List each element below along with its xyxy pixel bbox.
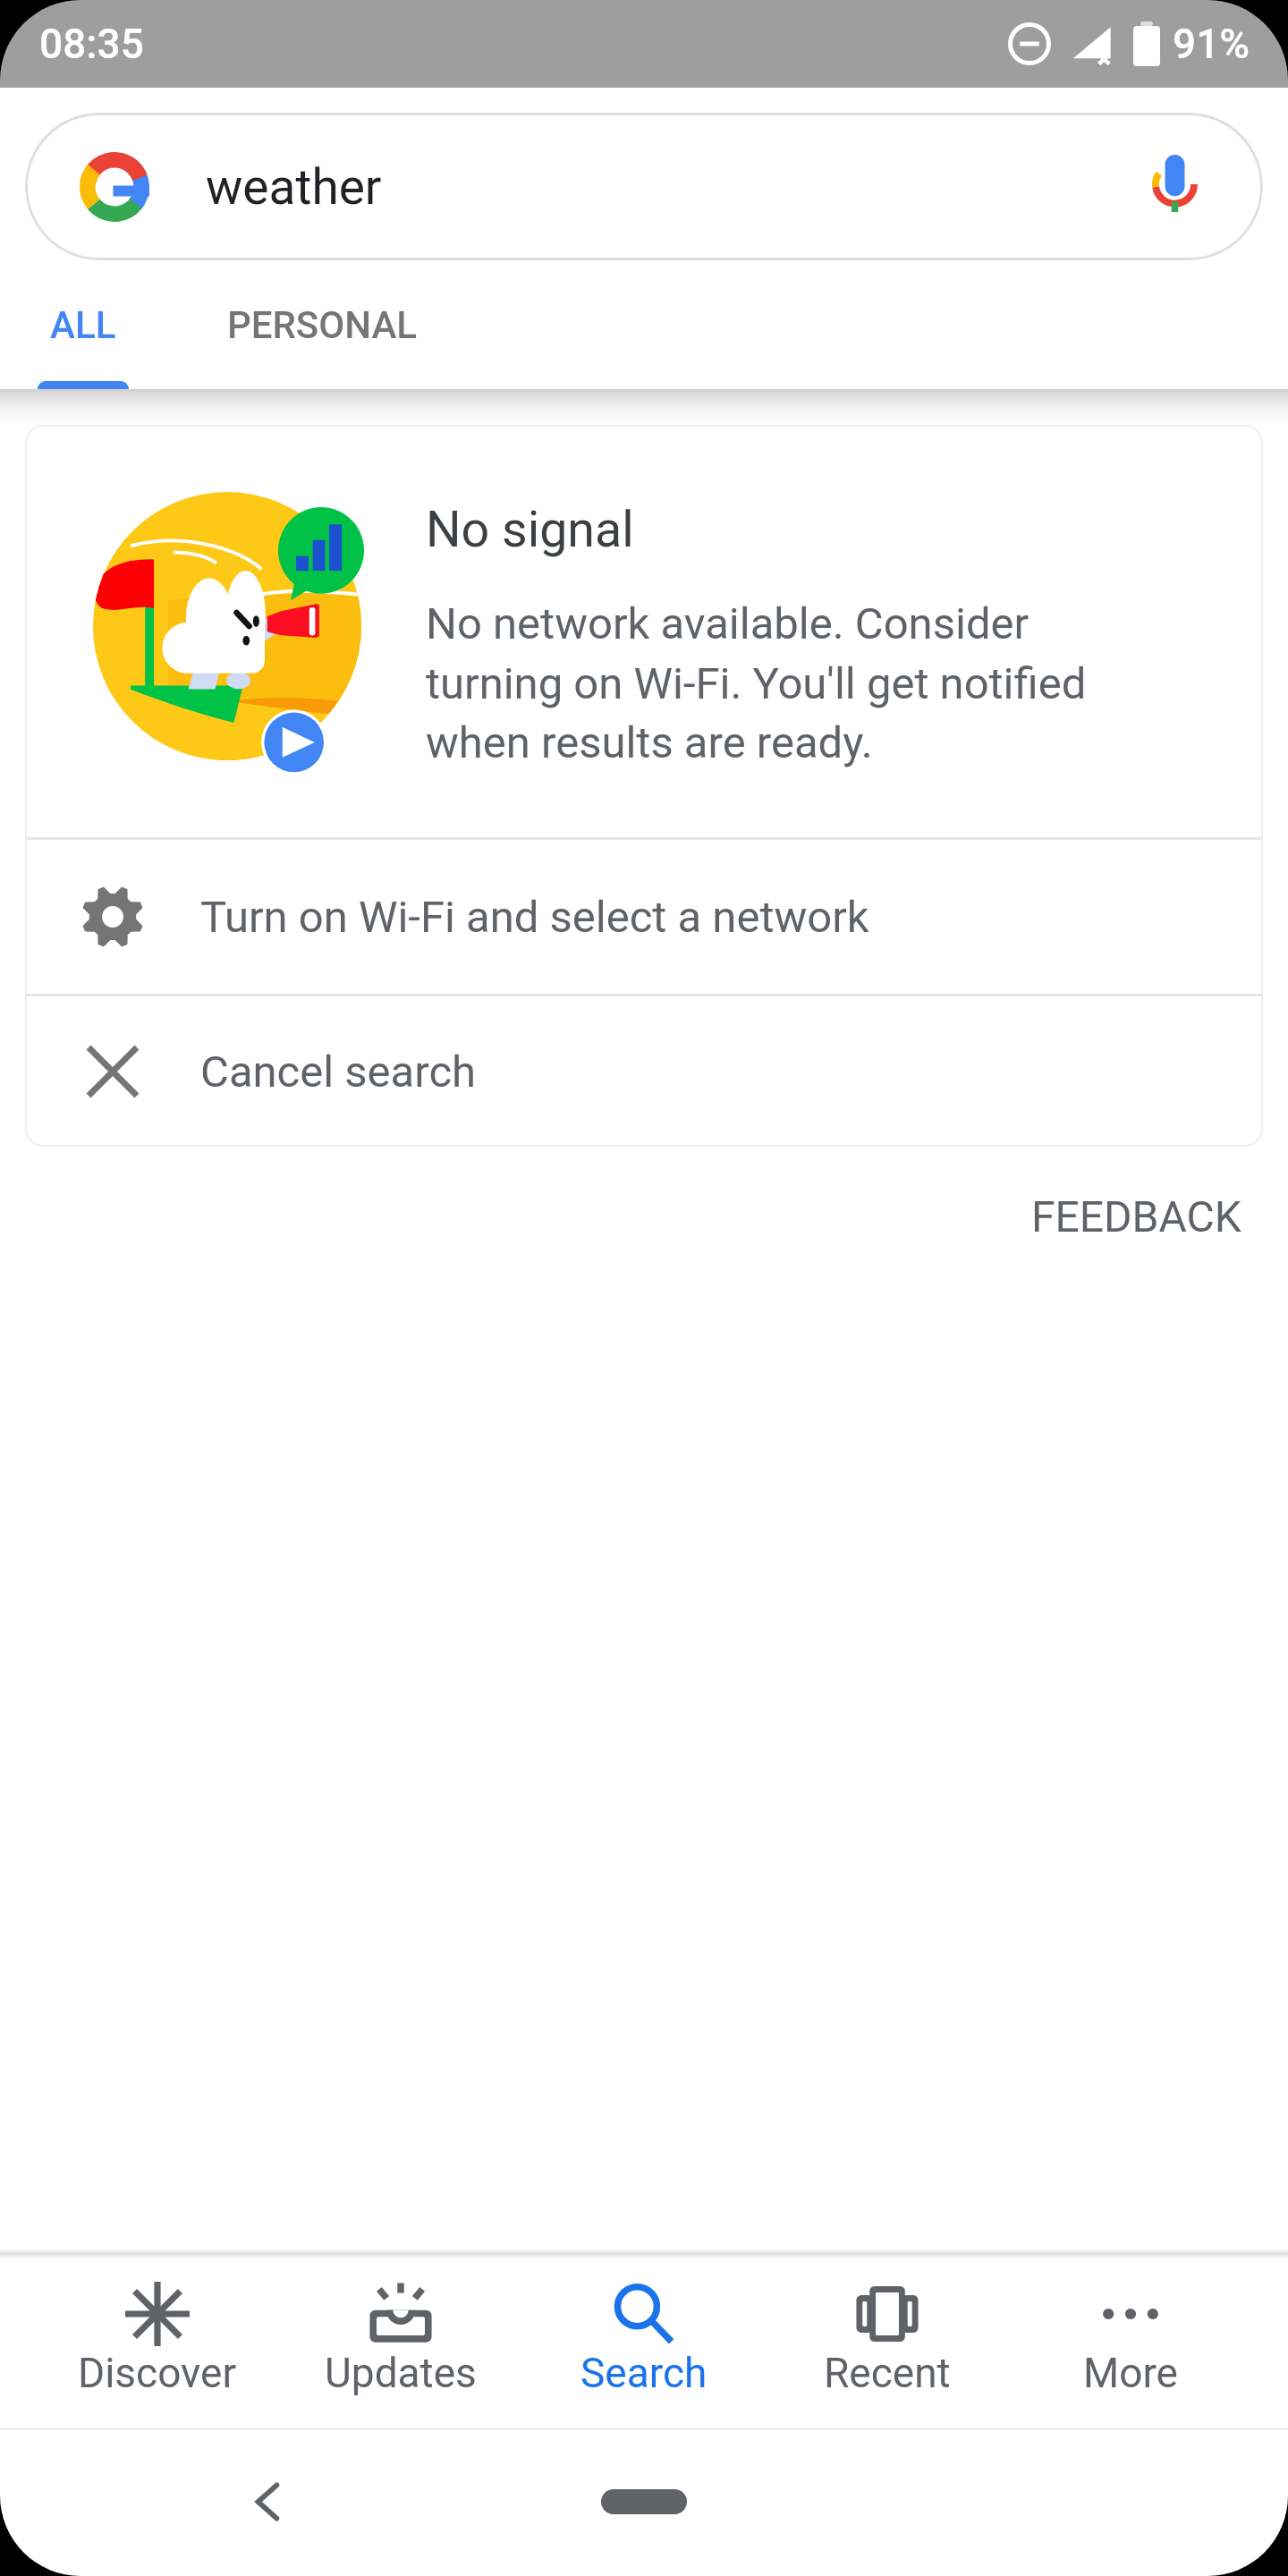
staticText: Recent <box>824 2349 951 2397</box>
button[interactable]: Recent <box>766 2259 1009 2428</box>
button[interactable]: Search <box>522 2259 766 2428</box>
staticText: 08:35 <box>39 20 144 68</box>
staticText: More <box>1083 2349 1178 2397</box>
staticText: Turn on Wi-Fi and select a network <box>200 892 869 943</box>
staticText: weather <box>206 158 382 216</box>
button[interactable]: Home <box>601 2489 687 2514</box>
staticText: No network available. Consider turning o… <box>426 598 1141 768</box>
staticText: Updates <box>325 2349 477 2397</box>
staticText: PERSONAL <box>227 303 418 347</box>
button[interactable]: Updates <box>279 2259 522 2428</box>
button[interactable]: Back <box>241 2476 293 2528</box>
staticText: ALL <box>50 303 116 347</box>
button[interactable]: FEEDBACK <box>1021 1172 1252 1261</box>
button[interactable]: More <box>1009 2259 1252 2428</box>
button[interactable]: Turn on Wi-Fi and select a network <box>25 840 1263 994</box>
staticText: No signal <box>426 501 634 559</box>
staticText: Cancel search <box>200 1046 477 1097</box>
button[interactable]: PERSONAL <box>165 260 479 389</box>
button[interactable]: ALL <box>0 260 165 389</box>
staticText: Discover <box>78 2349 237 2397</box>
staticText: 91% <box>1173 20 1250 68</box>
staticText: Search <box>580 2349 708 2397</box>
button[interactable]: weather <box>25 113 1263 260</box>
button[interactable]: Discover <box>36 2259 279 2428</box>
staticText: FEEDBACK <box>1031 1191 1241 1241</box>
button[interactable]: Cancel search <box>25 996 1263 1147</box>
